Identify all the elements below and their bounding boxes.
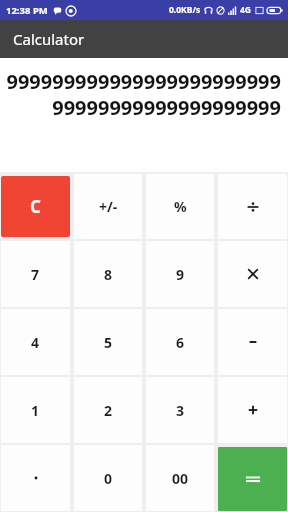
staticText: 0.0KB/s bbox=[169, 4, 201, 16]
staticText: 3 bbox=[176, 401, 185, 420]
button[interactable]: 3 bbox=[146, 377, 214, 443]
button[interactable]: Equals bbox=[218, 447, 287, 511]
staticText: 8 bbox=[104, 265, 113, 284]
staticText: % bbox=[174, 197, 187, 216]
staticText: 7 bbox=[31, 265, 40, 284]
staticText: 5 bbox=[104, 333, 113, 352]
staticText: 1 bbox=[31, 401, 40, 420]
button[interactable]: Divide bbox=[218, 174, 287, 239]
staticText: 4G bbox=[240, 4, 252, 16]
staticText: 9 bbox=[176, 265, 185, 284]
button[interactable]: % bbox=[146, 174, 214, 239]
staticText: 00 bbox=[172, 469, 189, 488]
button[interactable]: 4 bbox=[1, 309, 70, 375]
staticText: Calculator bbox=[13, 29, 85, 49]
staticText: 9999999999999999999999999999999999999999… bbox=[6, 68, 281, 121]
button[interactable]: 2 bbox=[74, 377, 142, 443]
button[interactable]: 9 bbox=[146, 241, 214, 307]
staticText: 2 bbox=[104, 401, 113, 420]
button[interactable]: C bbox=[1, 176, 70, 237]
button[interactable]: +/- bbox=[74, 174, 142, 239]
button[interactable]: 5 bbox=[74, 309, 142, 375]
button[interactable]: 0 bbox=[74, 445, 142, 511]
staticText: 12:38 PM bbox=[6, 4, 48, 17]
staticText: 6 bbox=[176, 333, 185, 352]
button[interactable]: 00 bbox=[146, 445, 214, 511]
button[interactable]: Subtract bbox=[218, 309, 287, 375]
button[interactable]: Multiply bbox=[218, 241, 287, 307]
button[interactable]: 6 bbox=[146, 309, 214, 375]
button[interactable]: Add bbox=[218, 377, 287, 443]
button[interactable]: 8 bbox=[74, 241, 142, 307]
staticText: 4 bbox=[31, 333, 40, 352]
staticText: 0 bbox=[104, 469, 113, 488]
staticText: +/- bbox=[99, 197, 118, 216]
button[interactable] bbox=[1, 445, 70, 511]
button[interactable]: 7 bbox=[1, 241, 70, 307]
staticText: C bbox=[30, 195, 41, 218]
button[interactable]: 1 bbox=[1, 377, 70, 443]
